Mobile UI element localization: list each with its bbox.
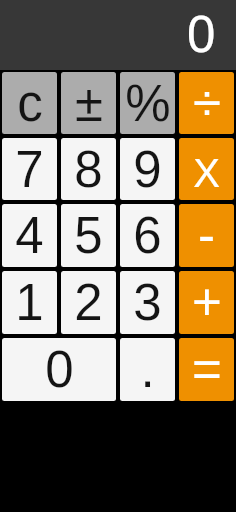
button[interactable]: 9	[120, 138, 175, 200]
staticText: 0	[45, 341, 74, 398]
button[interactable]: =	[179, 338, 234, 401]
button[interactable]: 3	[120, 271, 175, 334]
button[interactable]: -	[179, 204, 234, 267]
staticText: 3	[133, 274, 162, 331]
button[interactable]: c	[2, 72, 57, 134]
staticText: 2	[74, 274, 103, 331]
staticText: +	[192, 274, 222, 331]
staticText: =	[192, 341, 222, 398]
button[interactable]: 4	[2, 204, 57, 267]
staticText: ±	[75, 75, 103, 132]
button[interactable]: 0	[2, 338, 116, 401]
staticText: %	[125, 75, 171, 132]
button[interactable]: X	[179, 138, 234, 200]
staticText: 7	[15, 141, 44, 198]
staticText: 1	[15, 274, 44, 331]
staticText: 9	[133, 141, 162, 198]
staticText: X	[193, 151, 220, 196]
button[interactable]: 6	[120, 204, 175, 267]
staticText: 5	[74, 207, 103, 264]
button[interactable]: %	[120, 72, 175, 134]
button[interactable]: ±	[61, 72, 116, 134]
button[interactable]: 1	[2, 271, 57, 334]
staticText: 0	[187, 6, 216, 63]
button[interactable]: ÷	[179, 72, 234, 134]
staticText: -	[198, 207, 215, 264]
button[interactable]: 2	[61, 271, 116, 334]
button[interactable]: 7	[2, 138, 57, 200]
staticText: 4	[15, 207, 44, 264]
staticText: 8	[74, 141, 103, 198]
staticText: .	[140, 341, 155, 398]
staticText: ÷	[193, 75, 221, 132]
button[interactable]: +	[179, 271, 234, 334]
button[interactable]: .	[120, 338, 175, 401]
staticText: c	[17, 75, 43, 132]
button[interactable]: 5	[61, 204, 116, 267]
button[interactable]: 8	[61, 138, 116, 200]
staticText: 6	[133, 207, 162, 264]
